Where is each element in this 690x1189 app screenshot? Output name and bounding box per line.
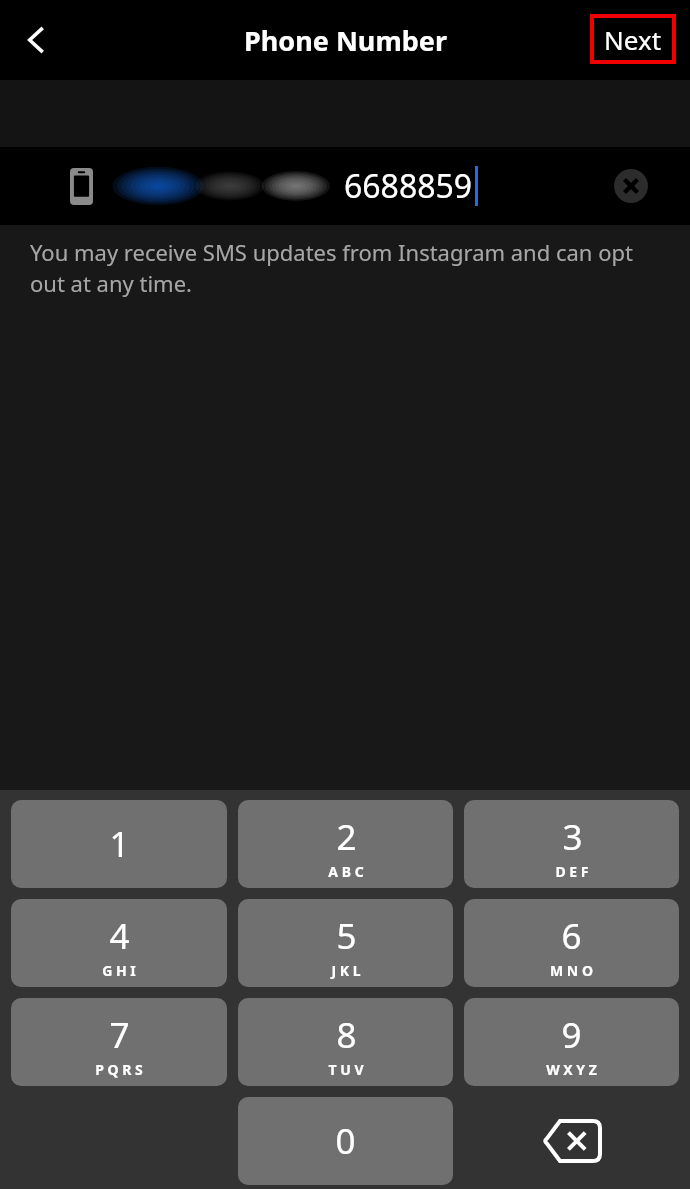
staticText: J K L (331, 961, 361, 980)
staticText: Next (604, 22, 662, 57)
button[interactable]: 6 (464, 899, 679, 987)
button[interactable]: 9 (464, 998, 679, 1086)
staticText: A B C (328, 862, 364, 881)
button[interactable]: Next (592, 16, 674, 62)
button[interactable]: Back (8, 11, 66, 69)
button[interactable]: Clear text (608, 163, 654, 209)
button[interactable]: 0 (238, 1097, 453, 1185)
staticText: 0 (335, 1117, 356, 1165)
staticText: 6 (561, 912, 582, 960)
staticText: You may receive SMS updates from Instagr… (30, 237, 656, 299)
staticText: P Q R S (95, 1060, 143, 1079)
button[interactable]: 3 (464, 800, 679, 888)
button[interactable]: 7 (11, 998, 227, 1086)
staticText: M N O (550, 961, 593, 980)
button[interactable]: 6688859 (0, 147, 690, 225)
staticText: W X Y Z (546, 1060, 597, 1079)
button[interactable]: Backspace (464, 1097, 679, 1185)
staticText: 4 (109, 912, 130, 960)
staticText: 6688859 (344, 164, 473, 208)
staticText: G H I (102, 961, 136, 980)
staticText: 2 (336, 813, 357, 861)
staticText: 3 (562, 813, 583, 861)
staticText: 7 (109, 1011, 130, 1059)
staticText: D E F (555, 862, 589, 881)
button[interactable]: 4 (11, 899, 227, 987)
staticText: Phone Number (244, 22, 447, 59)
staticText: 5 (336, 912, 357, 960)
button[interactable]: 2 (238, 800, 453, 888)
staticText: T U V (328, 1060, 364, 1079)
button[interactable]: 1 (11, 800, 227, 888)
staticText: 8 (336, 1011, 357, 1059)
staticText: 1 (109, 820, 130, 868)
button[interactable]: 8 (238, 998, 453, 1086)
staticText: 9 (561, 1011, 582, 1059)
button[interactable]: 5 (238, 899, 453, 987)
